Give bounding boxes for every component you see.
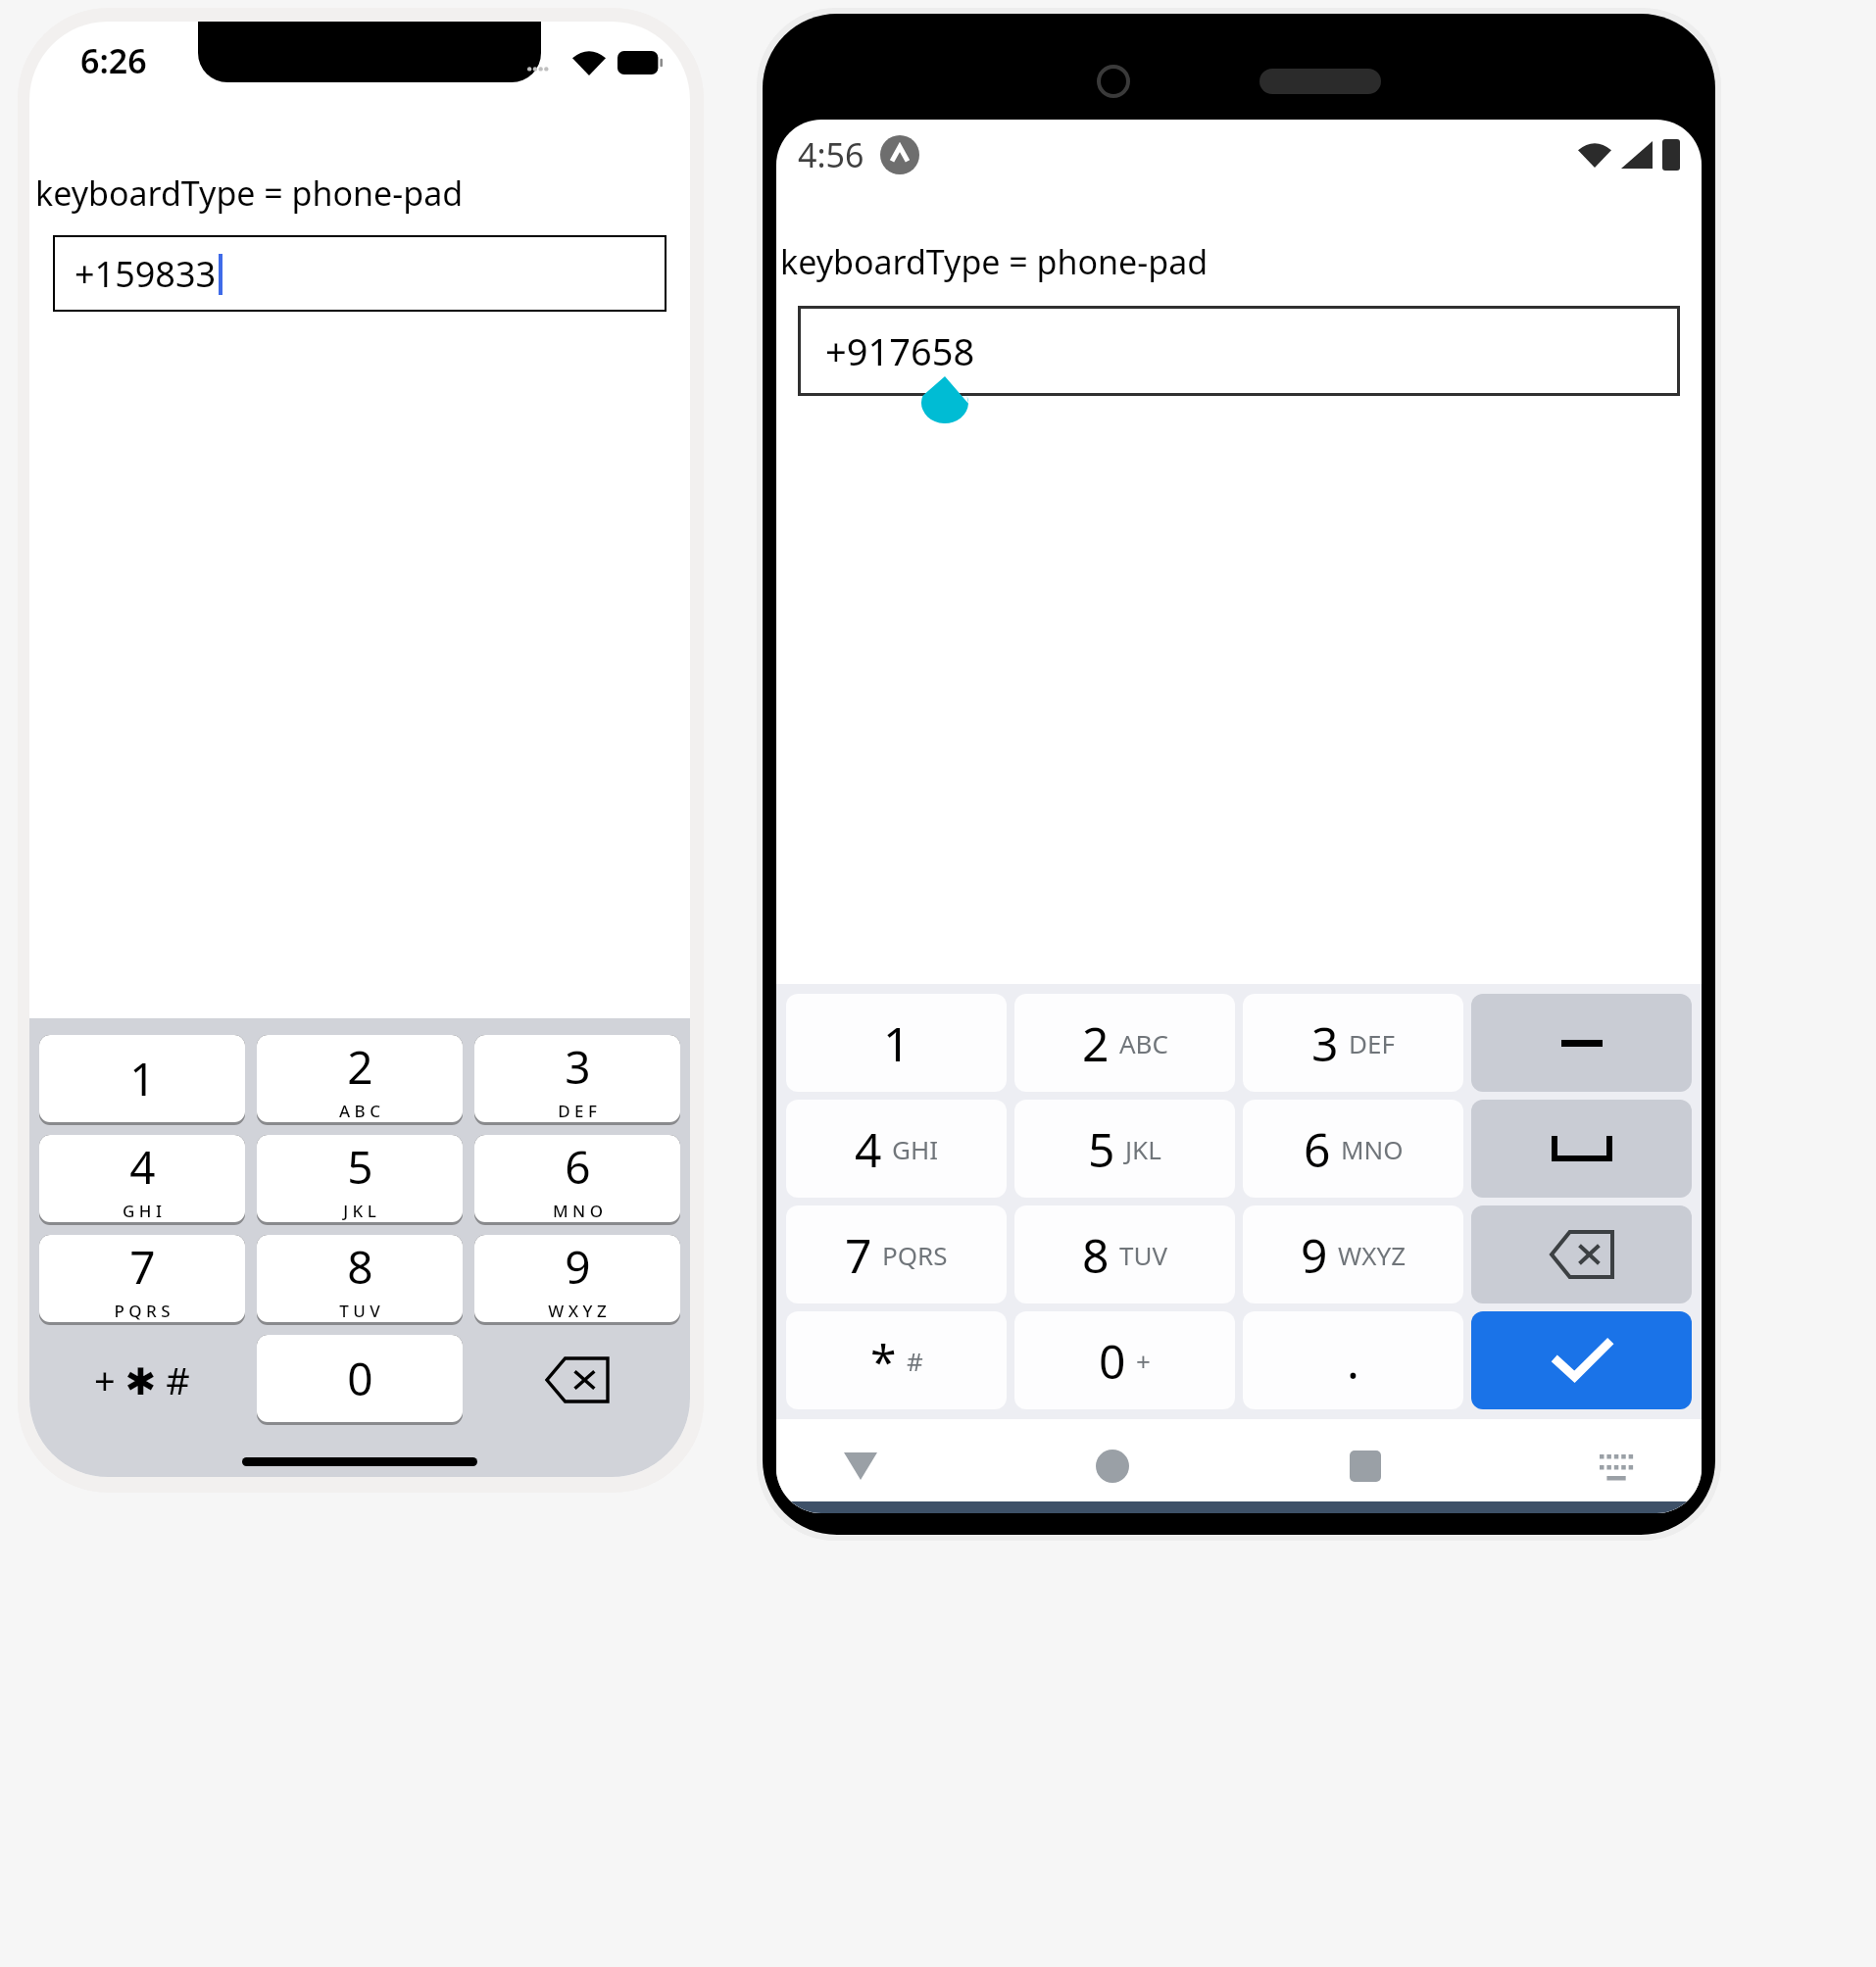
button[interactable]: * xyxy=(786,1311,1007,1409)
staticText: GHI xyxy=(892,1132,939,1166)
staticText: PQRS xyxy=(882,1238,948,1272)
button[interactable]: Done xyxy=(1471,1311,1692,1409)
staticText: JKL xyxy=(1125,1132,1161,1166)
staticText: WXYZ xyxy=(1338,1238,1407,1272)
button[interactable]: 4 xyxy=(39,1135,245,1225)
staticText: 4:56 xyxy=(798,132,864,177)
staticText: W X Y Z xyxy=(548,1300,607,1322)
button[interactable]: Dash xyxy=(1471,994,1692,1092)
button[interactable]: Home xyxy=(1067,1421,1158,1511)
staticText: +159833 xyxy=(74,250,217,298)
button[interactable]: 9 xyxy=(474,1235,680,1325)
staticText: 4 xyxy=(129,1136,156,1198)
button[interactable]: . xyxy=(1243,1311,1463,1409)
staticText: keyboardType = phone-pad xyxy=(35,171,464,216)
staticText: M N O xyxy=(553,1200,603,1222)
button[interactable]: Recents xyxy=(1320,1421,1410,1511)
staticText: 2 xyxy=(347,1036,373,1098)
staticText: DEF xyxy=(1349,1026,1395,1060)
button[interactable]: 8 xyxy=(257,1235,463,1325)
staticText: 1 xyxy=(129,1048,156,1109)
button[interactable]: 4 xyxy=(786,1100,1007,1198)
staticText: * xyxy=(870,1329,897,1393)
staticText: # xyxy=(907,1344,923,1378)
staticText: P Q R S xyxy=(114,1300,171,1322)
staticText: +917658 xyxy=(825,325,975,376)
button[interactable]: 5 xyxy=(1014,1100,1235,1198)
button[interactable]: +917658 xyxy=(798,306,1680,396)
button[interactable]: Space xyxy=(1471,1100,1692,1198)
staticText: A B C xyxy=(339,1100,380,1122)
button[interactable]: 9 xyxy=(1243,1205,1463,1303)
staticText: G H I xyxy=(123,1200,162,1222)
staticText: 2 xyxy=(1082,1011,1110,1075)
staticText: 7 xyxy=(845,1223,872,1287)
staticText: 8 xyxy=(1082,1223,1110,1287)
button[interactable]: 7 xyxy=(786,1205,1007,1303)
staticText: 1 xyxy=(883,1011,911,1075)
button[interactable]: 0 xyxy=(1014,1311,1235,1409)
button[interactable]: 2 xyxy=(257,1035,463,1125)
button[interactable]: 8 xyxy=(1014,1205,1235,1303)
staticText: 6 xyxy=(1304,1117,1331,1181)
button[interactable]: 6 xyxy=(1243,1100,1463,1198)
button[interactable]: 3 xyxy=(474,1035,680,1125)
staticText: ABC xyxy=(1119,1026,1168,1060)
staticText: 0 xyxy=(347,1348,373,1409)
staticText: keyboardType = phone-pad xyxy=(780,239,1209,284)
staticText: 5 xyxy=(347,1136,373,1198)
staticText: 5 xyxy=(1088,1117,1115,1181)
staticText: 8 xyxy=(347,1236,373,1298)
button[interactable]: 1 xyxy=(39,1035,245,1125)
staticText: 3 xyxy=(565,1036,591,1098)
staticText: + xyxy=(1136,1344,1151,1378)
staticText: 7 xyxy=(129,1236,156,1298)
button[interactable]: 6 xyxy=(474,1135,680,1225)
staticText: 9 xyxy=(565,1236,591,1298)
staticText: 6:26 xyxy=(80,38,147,83)
staticText: T U V xyxy=(339,1300,380,1322)
button[interactable]: Switch keyboard xyxy=(1572,1421,1662,1511)
staticText: 6 xyxy=(565,1136,591,1198)
button[interactable]: 0 xyxy=(257,1335,463,1425)
staticText: . xyxy=(1347,1329,1359,1393)
staticText: 0 xyxy=(1099,1329,1126,1393)
staticText: 4 xyxy=(855,1117,882,1181)
button[interactable]: 3 xyxy=(1243,994,1463,1092)
button[interactable]: 2 xyxy=(1014,994,1235,1092)
staticText: MNO xyxy=(1341,1132,1404,1166)
staticText: 9 xyxy=(1301,1223,1328,1287)
staticText: 3 xyxy=(1311,1011,1339,1075)
staticText: D E F xyxy=(558,1100,597,1122)
button[interactable]: + ✱ # xyxy=(39,1335,245,1425)
button[interactable]: Backspace xyxy=(474,1335,680,1425)
staticText: + ✱ # xyxy=(94,1354,190,1405)
staticText: J K L xyxy=(343,1200,376,1222)
button[interactable]: Back xyxy=(815,1421,906,1511)
button[interactable]: Backspace xyxy=(1471,1205,1692,1303)
button[interactable]: 7 xyxy=(39,1235,245,1325)
staticText: TUV xyxy=(1119,1238,1168,1272)
button[interactable]: 5 xyxy=(257,1135,463,1225)
button[interactable]: 1 xyxy=(786,994,1007,1092)
button[interactable]: +159833 xyxy=(53,235,666,312)
